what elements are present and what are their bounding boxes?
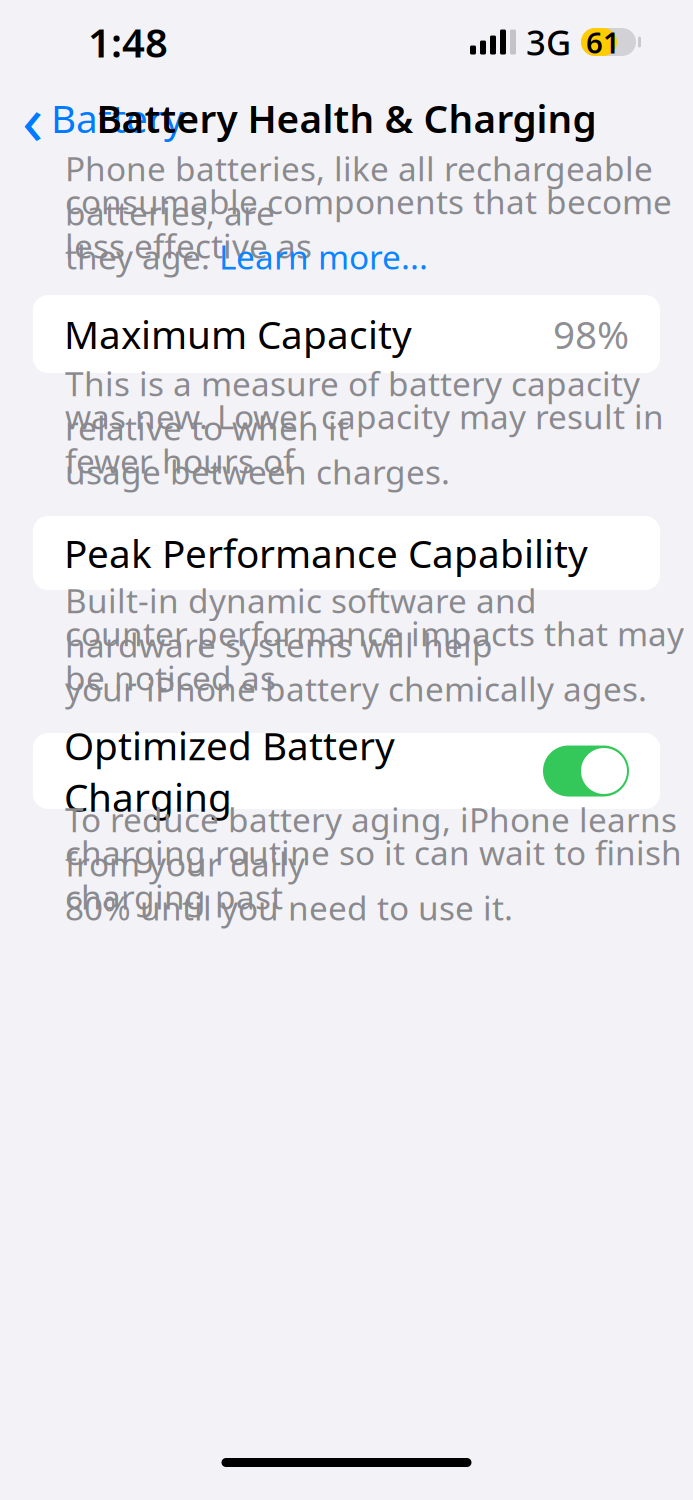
staticText: Learn more... — [219, 234, 428, 279]
staticText: 1:48 — [88, 15, 168, 68]
staticText: usage between charges. — [65, 449, 450, 494]
button[interactable]: Learn more... — [219, 234, 428, 279]
staticText: ‹ — [22, 72, 43, 164]
button[interactable]: ‹ — [14, 66, 192, 170]
button[interactable]: Maximum Capacity — [33, 295, 660, 373]
staticText: This is a measure of battery capacity re… — [65, 361, 640, 450]
staticText: To reduce battery aging, iPhone learns f… — [65, 797, 677, 886]
staticText: consumable components that become less e… — [65, 179, 672, 268]
staticText: Battery — [51, 92, 184, 144]
staticText: was new. Lower capacity may result in fe… — [65, 394, 664, 483]
staticText: Phone batteries, like all rechargeable b… — [65, 146, 653, 235]
staticText: your iPhone battery chemically ages. — [65, 666, 647, 711]
staticText: they age. — [65, 234, 219, 279]
staticText: Built-in dynamic software and hardware s… — [65, 578, 537, 667]
staticText: 61 — [586, 22, 620, 61]
staticText: Battery Health & Charging — [96, 92, 596, 144]
staticText: 3G — [526, 19, 571, 65]
staticText: Maximum Capacity — [64, 308, 412, 360]
staticText: Optimized Battery Charging — [64, 720, 395, 822]
staticText: charging routine so it can wait to finis… — [65, 830, 682, 919]
staticText: Peak Performance Capability — [64, 527, 588, 579]
staticText: 98% — [553, 308, 629, 360]
button[interactable]: Peak Performance Capability — [33, 516, 660, 590]
button[interactable]: Optimized Battery Charging — [33, 733, 660, 809]
staticText: counter performance impacts that may be … — [65, 611, 684, 700]
staticText: 80% until you need to use it. — [65, 885, 513, 930]
